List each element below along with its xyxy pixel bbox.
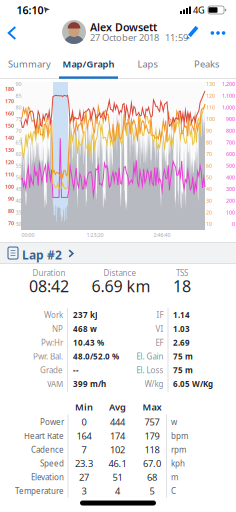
staticText: 1.03	[173, 323, 190, 334]
staticText: 757	[144, 416, 159, 428]
button[interactable]: Peaks	[0, 0, 236, 512]
button[interactable]: Back	[0, 0, 236, 512]
staticText: 468 w	[73, 323, 97, 334]
staticText: 399 m/h	[73, 379, 106, 389]
staticText: 40	[15, 197, 21, 204]
staticText: 6.05 W/Kg	[173, 379, 213, 389]
staticText: Peaks	[194, 58, 219, 70]
staticText: 110	[206, 104, 215, 111]
staticText: C	[171, 486, 176, 496]
staticText: Elevation	[31, 472, 64, 482]
staticText: 600	[226, 150, 235, 158]
staticText: 68	[147, 471, 157, 483]
staticText: Alex Dowsett	[90, 20, 157, 34]
staticText: EF	[155, 337, 163, 348]
staticText: 5	[149, 485, 154, 497]
staticText: 18	[173, 275, 191, 297]
staticText: 130	[5, 146, 14, 154]
staticText: 130	[206, 80, 215, 88]
staticText: 70	[15, 127, 21, 134]
staticText: 1.14	[173, 310, 190, 320]
staticText: 800	[226, 127, 235, 134]
staticText: 120	[5, 159, 14, 166]
button[interactable]: More	[0, 0, 236, 512]
staticText: Grade	[40, 365, 63, 375]
staticText: 140	[5, 134, 14, 141]
staticText: 10	[206, 220, 212, 228]
staticText: Lap #2	[22, 247, 62, 263]
staticText: 4G	[193, 4, 205, 16]
staticText: 1,000	[222, 104, 235, 111]
staticText: 2.69	[173, 337, 190, 348]
staticText: 10.43 %	[73, 337, 104, 348]
staticText: 237 kJ	[73, 310, 98, 320]
staticText: TSS	[176, 268, 188, 278]
staticText: W/kg	[144, 379, 163, 389]
staticText: 120	[206, 92, 215, 99]
staticText: 30	[206, 197, 212, 204]
staticText: 1,100	[222, 92, 235, 99]
staticText: 80	[206, 139, 212, 146]
staticText: Power	[40, 417, 64, 427]
button[interactable]: Summary	[0, 0, 236, 512]
staticText: 55	[15, 162, 21, 169]
button[interactable]: Laps	[0, 0, 236, 512]
staticText: 48.0/52.0 %	[73, 351, 119, 362]
staticText: Laps	[137, 58, 157, 70]
staticText: 70	[8, 220, 14, 227]
staticText: 0	[81, 416, 86, 428]
staticText: IF	[156, 310, 163, 320]
staticText: 102	[110, 443, 125, 456]
staticText: NP	[52, 323, 63, 334]
staticText: 60	[206, 162, 212, 169]
staticText: 174	[110, 430, 125, 442]
staticText: 444	[110, 416, 125, 428]
staticText: Speed	[40, 458, 64, 469]
staticText: 170	[5, 98, 14, 105]
staticText: 110	[5, 171, 14, 178]
staticText: Pw:Hr	[41, 337, 63, 348]
staticText: 100	[226, 209, 235, 216]
staticText: 16:10	[16, 3, 43, 17]
staticText: Cadence	[31, 444, 64, 455]
staticText: Min	[75, 401, 93, 413]
staticText: 90	[8, 195, 14, 202]
staticText: 75 m	[173, 365, 193, 375]
staticText: 118	[144, 443, 159, 456]
staticText: 67.0	[143, 457, 161, 470]
staticText: 60	[15, 150, 21, 158]
staticText: rpm	[171, 444, 186, 455]
staticText: 35	[15, 209, 21, 216]
button[interactable]: Map/Graph	[0, 0, 236, 512]
staticText: 80	[8, 207, 14, 215]
staticText: 900	[226, 115, 235, 123]
staticText: 00:00	[21, 231, 34, 239]
staticText: 46.1	[108, 457, 126, 470]
staticText: 50	[206, 174, 212, 181]
staticText: 85	[15, 92, 21, 99]
staticText: 51	[112, 471, 122, 483]
staticText: VAM	[47, 379, 63, 389]
staticText: 45	[15, 185, 21, 193]
staticText: Max	[142, 401, 161, 413]
staticText: 65	[15, 139, 21, 146]
staticText: 50	[15, 174, 21, 181]
staticText: kph	[171, 458, 185, 469]
staticText: 300	[226, 185, 235, 193]
staticText: 1,200	[222, 80, 235, 88]
staticText: 160	[5, 110, 14, 117]
staticText: 179	[144, 430, 159, 442]
staticText: VI	[155, 323, 163, 334]
staticText: 150	[5, 122, 14, 129]
button[interactable]: Edit	[0, 0, 236, 512]
staticText: Pwr. Bal.	[33, 351, 63, 362]
staticText: El. Gain	[136, 351, 163, 362]
button[interactable]: Lap #2	[0, 242, 236, 264]
staticText: Temperature	[15, 486, 64, 496]
staticText: --	[73, 365, 79, 375]
staticText: 3	[81, 485, 86, 497]
staticText: 200	[226, 197, 235, 204]
staticText: 75 m	[173, 351, 193, 362]
staticText: 40	[206, 185, 212, 193]
staticText: 4	[115, 485, 120, 497]
